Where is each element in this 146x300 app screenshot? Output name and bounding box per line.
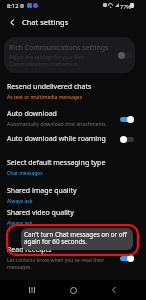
staticText: 8:12: [7, 2, 19, 10]
staticText: 77%: [120, 3, 131, 10]
button[interactable]: Back: [6, 16, 19, 29]
staticText: Automatically download chat attachments.: [7, 121, 108, 128]
staticText: Let contacts know when you've read their…: [7, 257, 116, 271]
staticText: Always ask: [7, 198, 33, 205]
staticText: As text or multimedia messages: [7, 94, 83, 101]
staticText: Shared video quality: [7, 208, 74, 218]
button[interactable]: Home: [64, 281, 82, 299]
button[interactable]: Auto download: [0, 105, 146, 132]
button[interactable]: Toggle: [118, 51, 132, 59]
button[interactable]: Toggle: [120, 135, 134, 143]
staticText: Rich Communications settings: [9, 43, 109, 53]
button[interactable]: Toggle: [120, 254, 134, 262]
button[interactable]: Shared video quality: [0, 204, 146, 231]
staticText: Can't turn Chat messages on or off again…: [24, 230, 127, 246]
staticText: Always ask: [7, 220, 33, 227]
staticText: Shared image quality: [7, 186, 77, 196]
staticText: Auto download: [7, 109, 57, 119]
button[interactable]: Read receipts: [0, 244, 146, 271]
staticText: Read receipts: [7, 245, 52, 255]
button[interactable]: Back: [105, 281, 123, 299]
button[interactable]: Shared image quality: [0, 182, 146, 209]
staticText: Adjust the settings for your Rich Commun…: [9, 54, 85, 68]
button[interactable]: Rich Communications settings: [4, 37, 135, 73]
staticText: Auto download while roaming: [7, 134, 106, 144]
button[interactable]: Resend undelivered chats: [0, 78, 146, 105]
button[interactable]: Select default messaging type: [0, 154, 146, 181]
button[interactable]: Recents: [23, 281, 41, 299]
staticText: Chat settings: [22, 17, 69, 27]
staticText: Resend undelivered chats: [7, 82, 92, 92]
button[interactable]: Toggle: [120, 115, 134, 123]
staticText: Chat messages: [7, 170, 43, 177]
button[interactable]: Auto download while roaming: [0, 127, 146, 150]
staticText: Select default messaging type: [7, 158, 106, 168]
